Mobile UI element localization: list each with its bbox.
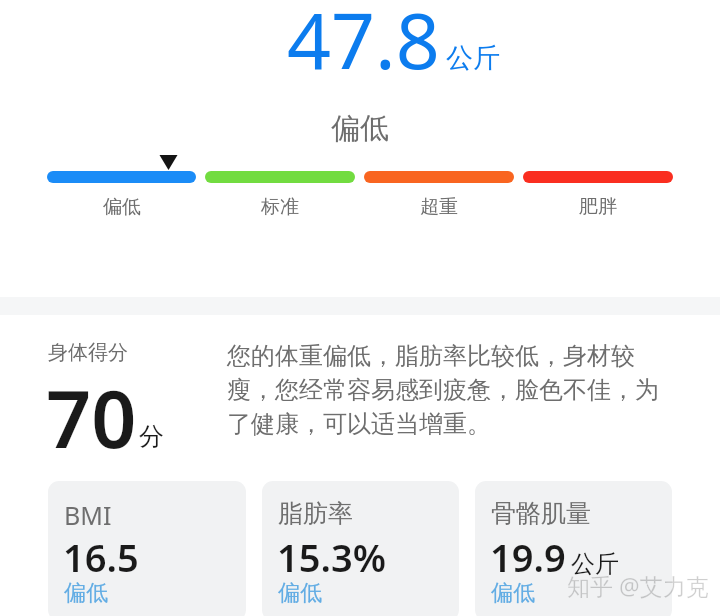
staticText: 偏低 [103,195,141,219]
staticText: 脂肪率 [278,498,353,529]
button[interactable]: 偏低 [47,195,196,219]
staticText: 公斤 [571,549,619,579]
button[interactable]: 标准 [205,195,355,219]
staticText: 标准 [261,195,299,219]
other: Current range marker [159,154,178,171]
button[interactable]: 超重 [364,195,514,219]
button[interactable]: 脂肪率 [262,481,459,616]
staticText: 您的体重偏低，脂肪率比较低，身材较瘦，您经常容易感到疲惫，脸色不佳，为了健康，可… [227,341,663,440]
staticText: 分 [139,421,164,452]
staticText: 公斤 [446,41,500,75]
staticText: 偏低 [491,579,535,607]
staticText: 47.8 [287,0,440,92]
staticText: 16.5 [63,531,139,583]
staticText: 骨骼肌量 [491,498,591,529]
staticText: 偏低 [278,579,322,607]
staticText: 偏低 [331,110,389,147]
staticText: 19.9 [490,531,566,583]
staticText: 偏低 [64,579,108,607]
staticText: 肥胖 [579,195,617,219]
button[interactable]: BMI [48,481,246,616]
button[interactable]: 肥胖 [523,195,673,219]
button[interactable]: 47.8 [287,0,440,92]
staticText: 70 [46,364,137,472]
staticText: 超重 [420,195,458,219]
staticText: 15.3% [277,531,386,583]
staticText: 知乎 @艾力克 [567,570,709,601]
staticText: BMI [64,498,112,532]
button[interactable]: 骨骼肌量 [475,481,672,616]
staticText: 身体得分 [48,340,128,365]
